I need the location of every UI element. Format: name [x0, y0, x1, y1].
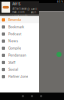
- button[interactable]: Recents: [40, 95, 42, 97]
- staticText: Bookmark: [8, 25, 24, 29]
- staticText: 85%: [57, 0, 63, 3]
- staticText: News: [8, 39, 18, 43]
- button[interactable]: Podcast: [0, 30, 39, 38]
- button[interactable]: Staff: [0, 59, 39, 66]
- staticText: Pendanaan: [8, 53, 26, 57]
- staticText: Ganti akun: [31, 7, 38, 14]
- button[interactable]: Partner Zone: [0, 73, 39, 80]
- staticText: Staff: [8, 60, 15, 64]
- staticText: Partner Zone: [8, 75, 28, 79]
- staticText: Sosial: [8, 67, 18, 71]
- staticText: Afif S.: [12, 2, 21, 6]
- button[interactable]: Home: [31, 95, 33, 97]
- button[interactable]: Back: [22, 95, 24, 97]
- staticText: Lihat profil: [12, 15, 28, 18]
- button[interactable]: Pendanaan: [0, 52, 39, 59]
- button[interactable]: Beranda: [0, 16, 39, 23]
- staticText: Beranda: [8, 18, 21, 22]
- staticText: Podcast: [8, 32, 21, 36]
- button[interactable]: Bookmark: [0, 23, 39, 30]
- button[interactable]: Compile: [0, 45, 39, 52]
- button[interactable]: News: [0, 38, 39, 45]
- button[interactable]: Sosial: [0, 66, 39, 73]
- button[interactable]: Compose: [56, 52, 62, 57]
- staticText: afifsetiawan@mail.com: [12, 7, 30, 14]
- staticText: Compile: [8, 46, 21, 50]
